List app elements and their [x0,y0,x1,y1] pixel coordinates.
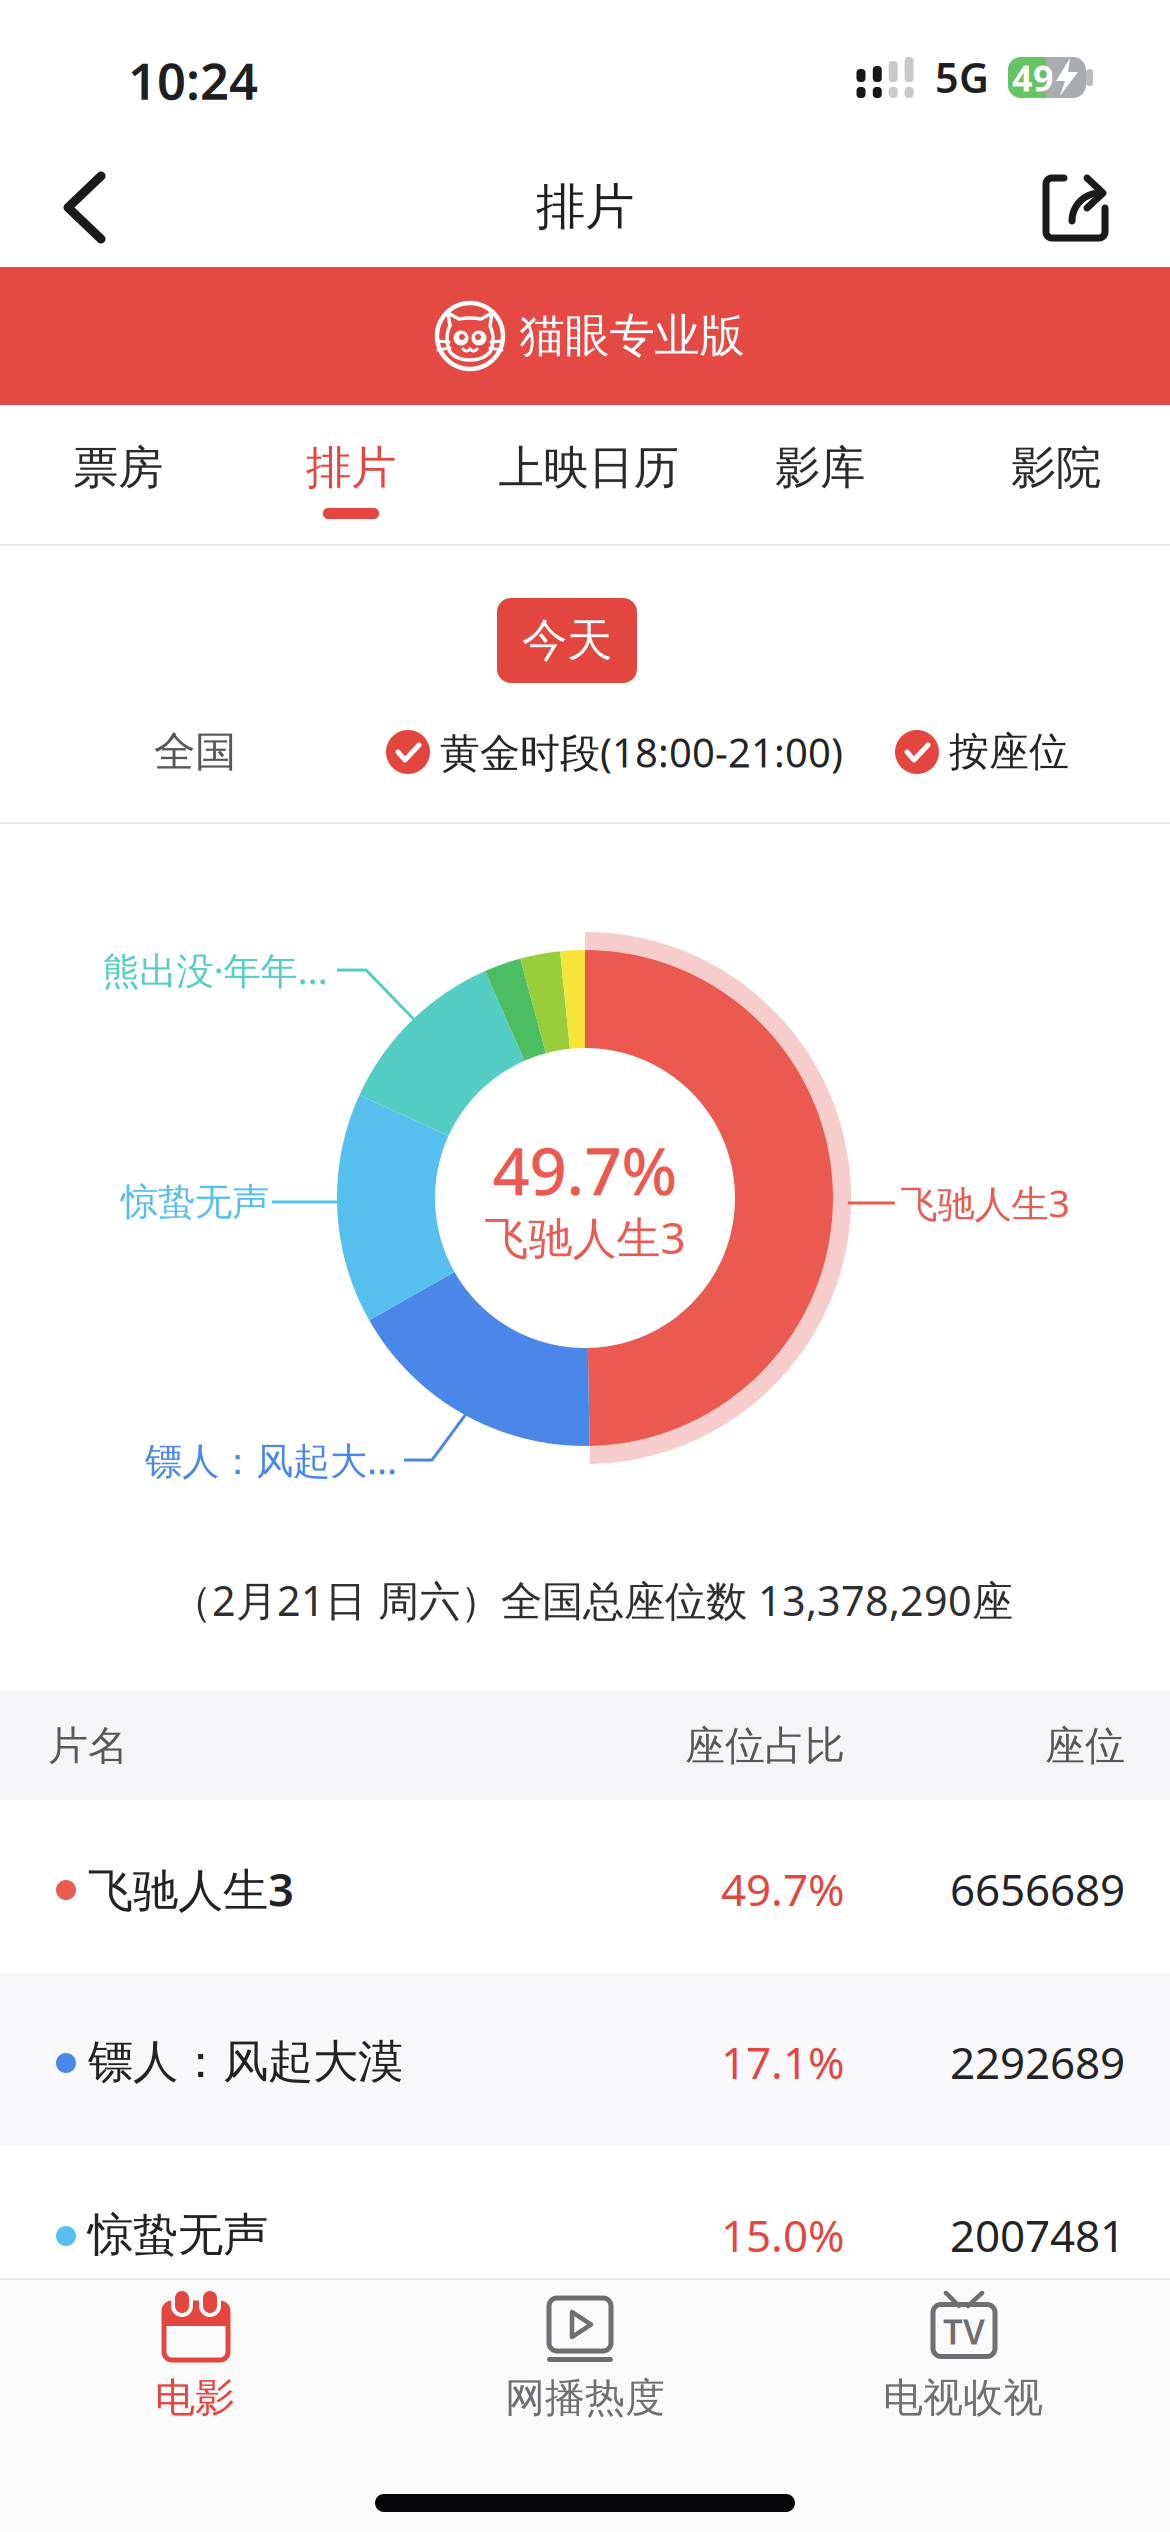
staticText: 排片 [536,177,634,237]
staticText: 熊出没·年年... [102,945,327,995]
button[interactable]: 飞驰人生3 [0,1800,1170,1973]
staticText: TV [943,2308,985,2354]
staticText: 飞驰人生3 [88,1859,294,1919]
staticText: 飞驰人生3 [900,1178,1069,1228]
button[interactable]: 镖人：风起大漠 [0,1973,1170,2146]
staticText: 15.0% [721,2206,845,2264]
staticText: 镖人：风起大... [145,1435,397,1485]
staticText: 票房 [73,440,163,496]
button[interactable]: 票房 [73,413,163,523]
staticText: 10:24 [128,46,258,114]
button[interactable]: 今天 [497,598,637,683]
staticText: 惊蛰无声 [88,2207,268,2263]
staticText: 片名 [48,1721,128,1770]
staticText: 2292689 [950,2033,1125,2091]
staticText: 2007481 [950,2206,1125,2264]
staticText: 网播热度 [505,2373,665,2422]
staticText: 49.7% [721,1860,845,1918]
staticText: 影库 [775,440,865,496]
staticText: 座位占比 [685,1721,845,1770]
button[interactable]: 影库 [775,413,865,523]
staticText: 今天 [522,613,612,668]
staticText: 49.7% [492,1127,677,1213]
staticText: 按座位 [949,727,1069,776]
staticText: 电影 [155,2373,235,2422]
staticText: 镖人：风起大漠 [88,2034,403,2090]
button[interactable]: 惊蛰无声 [0,2146,1170,2319]
button[interactable]: Share [1031,162,1121,252]
staticText: 惊蛰无声 [121,1179,269,1225]
staticText: 影院 [1011,440,1101,496]
button[interactable]: Back [50,162,120,252]
button[interactable]: 排片 [306,413,396,523]
button[interactable]: 按座位 [891,721,1091,783]
staticText: 黄金时段(18:00-21:00) [440,725,843,778]
staticText: 全国 [154,727,236,777]
staticText: 座位 [1045,1721,1125,1770]
staticText: 5G [935,50,989,104]
staticText: 49 [1012,54,1054,101]
staticText: 飞驰人生3 [484,1208,685,1266]
button[interactable]: TV [803,2278,1123,2438]
button[interactable]: 上映日历 [498,413,678,523]
staticText: 6656689 [950,1860,1125,1918]
staticText: 排片 [306,440,396,496]
button[interactable]: 电影 [35,2278,355,2438]
staticText: 电视收视 [883,2373,1043,2422]
staticText: 上映日历 [498,440,678,496]
staticText: （2月21日 周六）全国总座位数 13,378,290座 [171,1573,1013,1627]
button[interactable]: 网播热度 [425,2278,745,2438]
button[interactable]: 黄金时段(18:00-21:00) [382,721,862,783]
staticText: 猫眼专业版 [519,308,744,364]
staticText: 17.1% [721,2033,845,2091]
button[interactable]: 影院 [1011,413,1101,523]
